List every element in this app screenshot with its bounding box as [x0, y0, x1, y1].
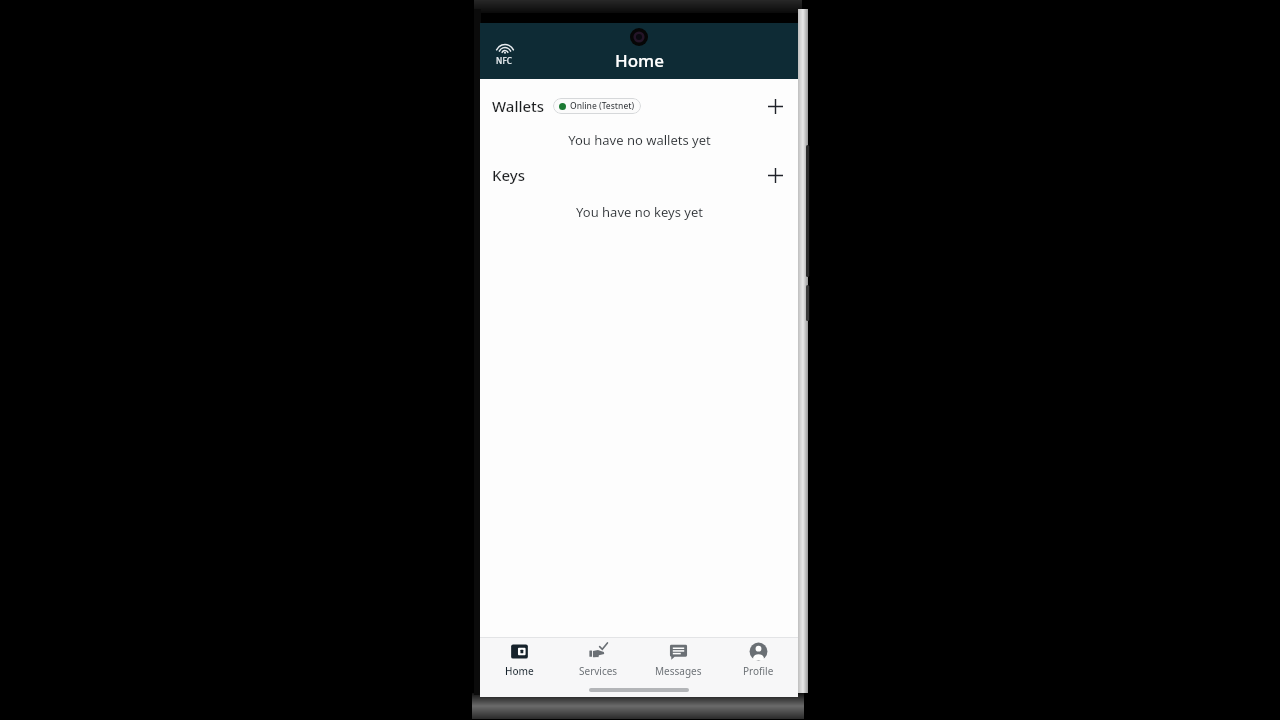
- staticText: NFC: [496, 55, 513, 66]
- button[interactable]: NFC: [493, 41, 516, 68]
- staticText: Home: [505, 664, 534, 678]
- staticText: You have no wallets yet: [568, 131, 711, 149]
- button[interactable]: Add key: [762, 162, 788, 188]
- button[interactable]: Messages: [638, 638, 718, 684]
- staticText: Profile: [743, 664, 774, 678]
- staticText: Messages: [655, 664, 702, 678]
- staticText: Wallets: [492, 96, 545, 116]
- button[interactable]: Online (Testnet): [553, 98, 641, 114]
- button[interactable]: Services: [559, 638, 638, 684]
- staticText: Services: [579, 664, 618, 678]
- staticText: Home: [615, 49, 664, 72]
- button[interactable]: Home: [480, 638, 559, 684]
- staticText: Keys: [492, 165, 526, 185]
- button[interactable]: Add wallet: [762, 93, 788, 119]
- button[interactable]: Profile: [718, 638, 798, 684]
- staticText: Online (Testnet): [570, 100, 635, 112]
- staticText: You have no keys yet: [576, 203, 703, 221]
